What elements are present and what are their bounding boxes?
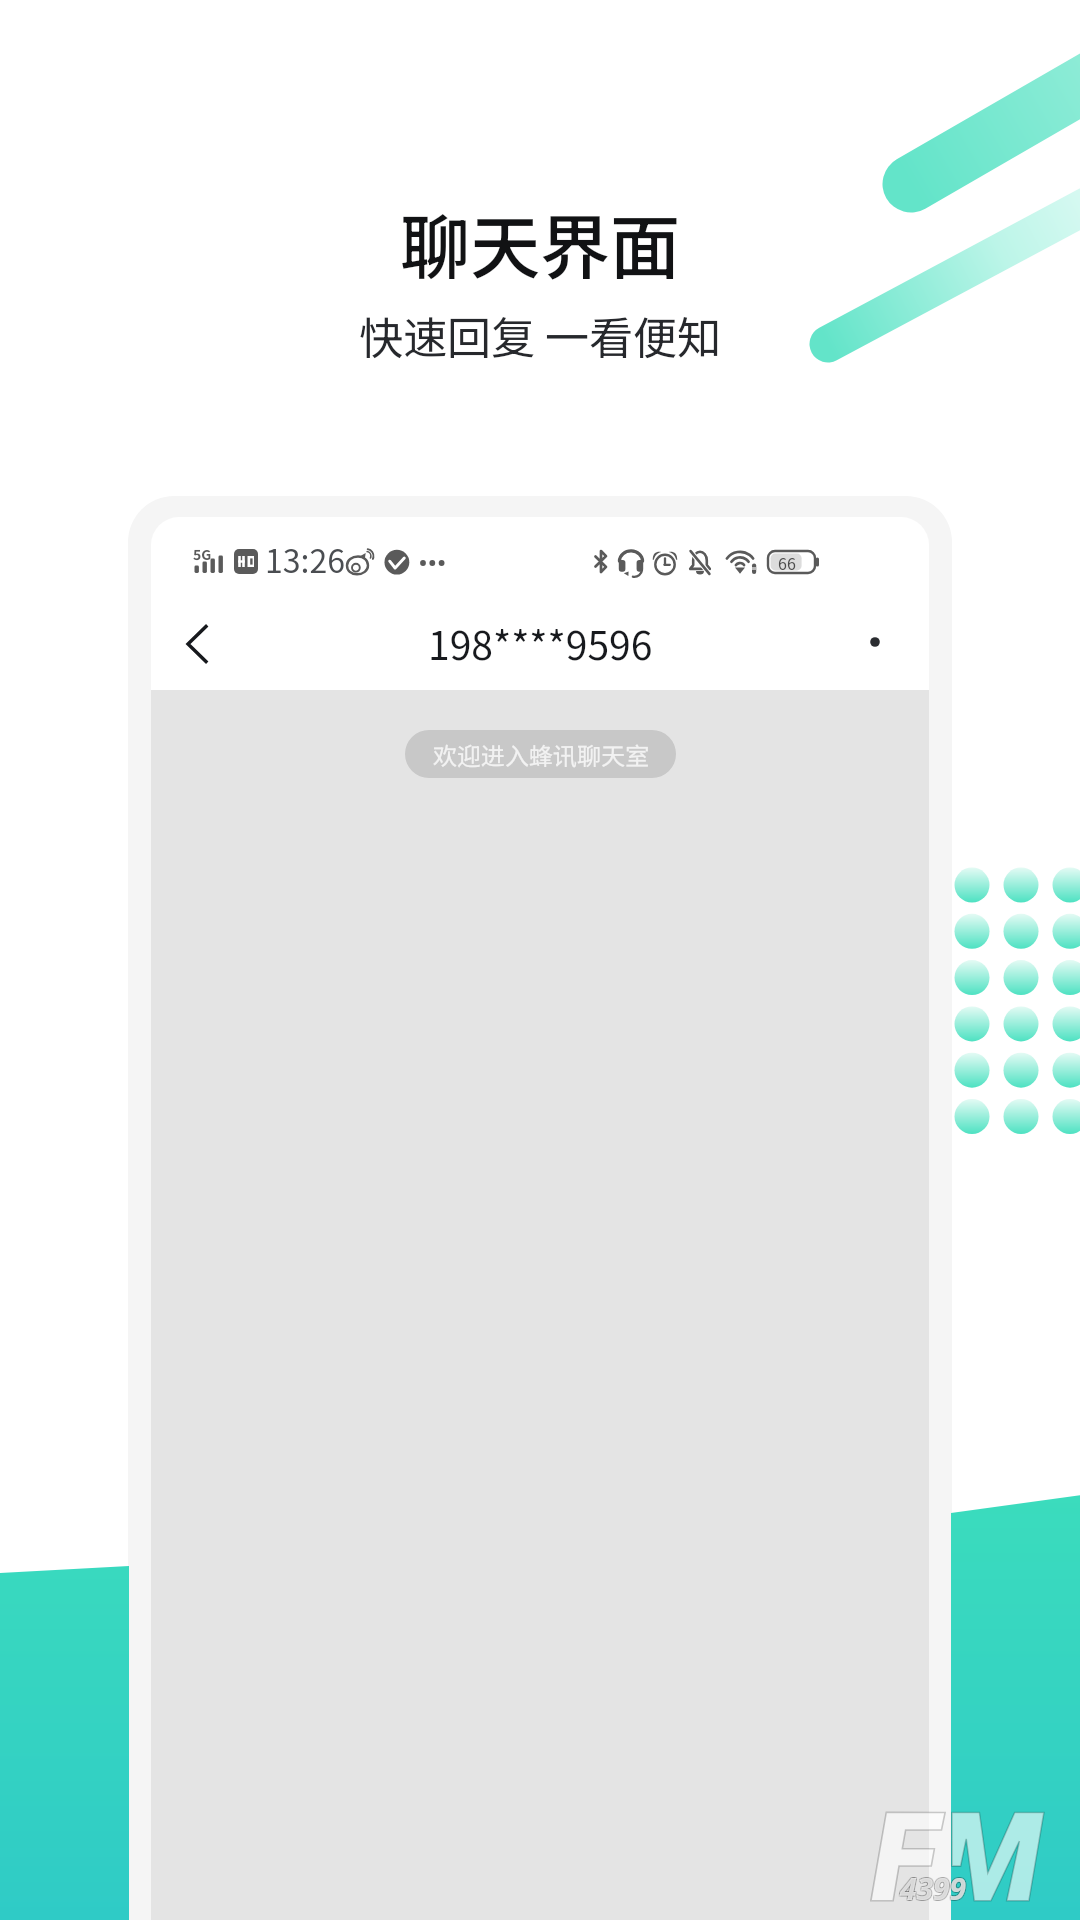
button[interactable]: 欢迎进入蜂讯聊天室	[405, 730, 676, 778]
staticText: 4399	[899, 1868, 966, 1909]
staticText: 4399	[900, 1869, 967, 1910]
staticText: 198****9596	[428, 615, 653, 671]
staticText: 4399	[901, 1867, 968, 1908]
staticText: 4399	[899, 1869, 966, 1910]
staticText: 4399	[901, 1868, 968, 1909]
staticText: 4399	[899, 1867, 966, 1908]
button[interactable]: More options	[853, 620, 897, 664]
staticText: 4399	[900, 1868, 967, 1909]
staticText: 4399	[900, 1867, 967, 1908]
staticText: 66	[778, 551, 796, 574]
staticText: 5G	[193, 544, 212, 564]
staticText: 快速回复 一看便知	[359, 303, 721, 367]
staticText: 13:26	[265, 536, 345, 582]
staticText: 欢迎进入蜂讯聊天室	[433, 737, 649, 772]
staticText: 聊天界面	[400, 192, 680, 293]
button[interactable]: Back	[163, 612, 225, 674]
staticText: 4399	[901, 1869, 968, 1910]
